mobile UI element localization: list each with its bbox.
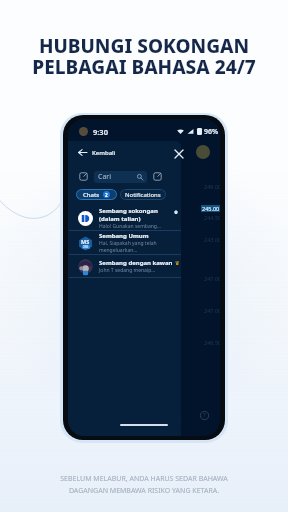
- staticText: HUBUNGI SOKONGAN PELBAGAI BAHASA 24/7: [32, 33, 256, 80]
- staticText: 9:30: [93, 127, 108, 137]
- staticText: 245.00: [202, 205, 220, 212]
- staticText: Kembali: [92, 149, 116, 157]
- button[interactable]: Search: [170, 408, 184, 422]
- button[interactable]: Sembang dengan kawan: [68, 255, 181, 277]
- staticText: Chats: [83, 191, 100, 199]
- button[interactable]: Chats: [76, 189, 117, 200]
- staticText: 247.00: [204, 307, 220, 314]
- staticText: SEBELUM MELABUR, ANDA HARUS SEDAR BAHAWA…: [60, 474, 228, 495]
- button[interactable]: New chat: [153, 172, 162, 181]
- staticText: Sembang dengan kawan: [99, 259, 173, 267]
- staticText: ♛: [175, 260, 178, 266]
- button[interactable]: Filter: [79, 172, 88, 181]
- button[interactable]: Sembang sokongan: [68, 206, 181, 230]
- staticText: 249.00: [204, 183, 220, 190]
- staticText: 2: [105, 192, 108, 198]
- staticText: 247.00: [204, 275, 220, 282]
- button[interactable]: Close: [171, 146, 187, 162]
- staticText: John T sedang menaip...: [99, 267, 156, 274]
- staticText: 244.50: [204, 214, 220, 221]
- button[interactable]: Kembali: [75, 145, 119, 160]
- staticText: 96%: [204, 127, 219, 137]
- staticText: MS: [81, 238, 90, 245]
- staticText: Notifications: [125, 191, 161, 199]
- button[interactable]: Cari: [94, 171, 147, 183]
- button[interactable]: MS: [68, 231, 181, 254]
- staticText: (dalam talian): [99, 215, 141, 223]
- staticText: Cari: [98, 172, 112, 182]
- staticText: Sembang sokongan: [99, 207, 158, 215]
- staticText: Hai, Siapakah yang telah mengeluarkan...: [99, 240, 178, 254]
- button[interactable]: Profile: [196, 145, 210, 159]
- staticText: 243.00: [204, 236, 220, 243]
- staticText: Sembang Umum: [99, 232, 149, 240]
- staticText: Halo! Gunakan sembang...: [99, 223, 161, 230]
- staticText: ?: [203, 411, 206, 419]
- button[interactable]: Notifications: [120, 189, 166, 200]
- staticText: 256: [83, 245, 89, 249]
- staticText: 246.50: [204, 339, 220, 346]
- button[interactable]: Help: [197, 408, 211, 422]
